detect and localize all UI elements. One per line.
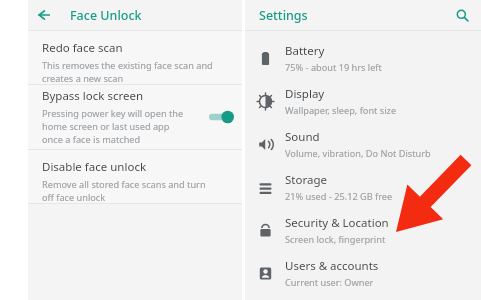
staticText: Security & Location (285, 215, 389, 231)
button[interactable]: Disable face unlock (28, 150, 242, 203)
button[interactable]: Bypass lock screen (28, 85, 242, 149)
button[interactable]: Display (245, 80, 481, 123)
staticText: 75% - about 19 hrs left (285, 61, 382, 74)
staticText: This removes the existing face scan and (42, 59, 213, 72)
staticText: home screen or last used app (42, 120, 170, 133)
staticText: Current user: Owner (285, 276, 374, 289)
staticText: Disable face unlock (42, 159, 147, 175)
button[interactable]: Battery (245, 37, 481, 80)
staticText: Pressing power key will open the (42, 107, 184, 120)
staticText: Battery (285, 43, 325, 59)
button[interactable]: Sound (245, 123, 481, 166)
staticText: Sound (285, 129, 320, 145)
staticText: Settings (259, 7, 308, 24)
staticText: Screen lock, fingerprint (285, 233, 386, 246)
button[interactable]: Search (447, 0, 477, 30)
staticText: Wallpaper, sleep, font size (285, 104, 397, 117)
button[interactable]: Storage (245, 166, 481, 209)
staticText: Storage (285, 172, 327, 188)
staticText: 21% used - 25.12 GB free (285, 190, 393, 203)
staticText: creates a new scan (42, 72, 124, 84)
staticText: Users & accounts (285, 258, 379, 274)
button[interactable]: Security & Location (245, 209, 481, 252)
button[interactable]: Users & accounts (245, 252, 481, 295)
staticText: once a face is matched (42, 133, 141, 146)
staticText: Display (285, 86, 325, 102)
button[interactable]: Bypass lock screen toggle (200, 85, 242, 149)
staticText: Face Unlock (70, 7, 142, 24)
staticText: Redo face scan (42, 40, 123, 56)
button[interactable]: Redo face scan (28, 31, 242, 84)
button[interactable]: Back (28, 0, 58, 30)
staticText: off face unlock (42, 191, 106, 203)
staticText: Bypass lock screen (42, 88, 144, 104)
staticText: Remove all stored face scans and turn (42, 178, 206, 191)
staticText: Volume, vibration, Do Not Disturb (285, 147, 431, 160)
